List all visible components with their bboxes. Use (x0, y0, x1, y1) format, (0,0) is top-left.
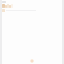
button[interactable] (2, 9, 62, 12)
button[interactable]: Add (30, 59, 34, 63)
button[interactable] (2, 4, 5, 8)
button[interactable] (5, 5, 7, 8)
button[interactable] (9, 5, 11, 8)
